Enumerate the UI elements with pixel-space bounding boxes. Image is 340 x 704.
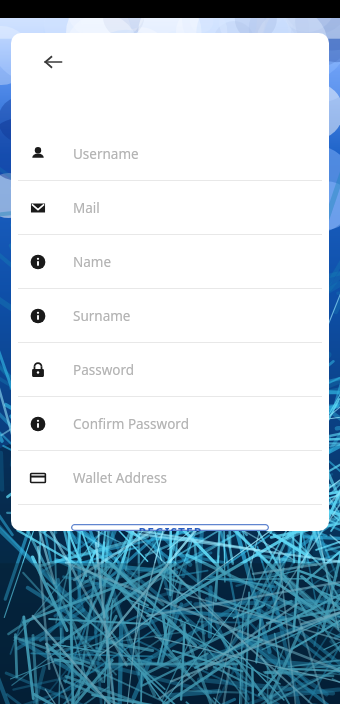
staticText: REGISTER — [138, 524, 203, 531]
button[interactable]: Confirm Password — [11, 397, 329, 450]
staticText: Name — [73, 253, 112, 271]
staticText: Surname — [73, 307, 131, 325]
button[interactable]: REGISTER — [71, 524, 269, 531]
staticText: Confirm Password — [73, 415, 189, 433]
button[interactable]: Wallet Address — [11, 451, 329, 504]
staticText: Username — [73, 145, 139, 163]
button[interactable]: Name — [11, 235, 329, 288]
button[interactable]: Back — [37, 46, 69, 78]
staticText: Wallet Address — [73, 469, 167, 487]
button[interactable]: Username — [11, 127, 329, 180]
button[interactable]: Password — [11, 343, 329, 396]
staticText: Mail — [73, 199, 100, 217]
button[interactable]: Mail — [11, 181, 329, 234]
button[interactable]: Surname — [11, 289, 329, 342]
staticText: Password — [73, 361, 135, 379]
